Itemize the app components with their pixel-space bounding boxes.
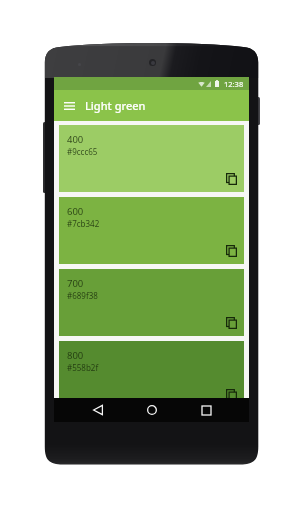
button[interactable]: Copy #689f38 (224, 316, 238, 330)
button[interactable]: Copy #558b2f (224, 388, 238, 402)
staticText: #7cb342 (67, 218, 100, 229)
button[interactable]: 800 (59, 341, 244, 408)
button[interactable]: 600 (59, 197, 244, 264)
staticText: 700 (67, 277, 84, 290)
button[interactable]: Copy #7cb342 (224, 244, 238, 258)
staticText: 800 (67, 349, 84, 362)
staticText: #558b2f (67, 362, 99, 373)
staticText: 12:38 (224, 79, 244, 89)
button[interactable]: Open navigation menu (54, 90, 85, 121)
button[interactable]: Copy #9ccc65 (224, 172, 238, 186)
button[interactable]: 400 (59, 125, 244, 192)
button[interactable]: Recent apps (194, 398, 218, 422)
button[interactable]: Home (140, 398, 164, 422)
button[interactable]: 700 (59, 269, 244, 336)
staticText: #689f38 (67, 290, 98, 301)
button[interactable]: Back (86, 398, 110, 422)
staticText: Light green (85, 98, 146, 113)
staticText: 400 (67, 133, 84, 146)
staticText: 600 (67, 205, 84, 218)
staticText: #9ccc65 (67, 146, 98, 157)
